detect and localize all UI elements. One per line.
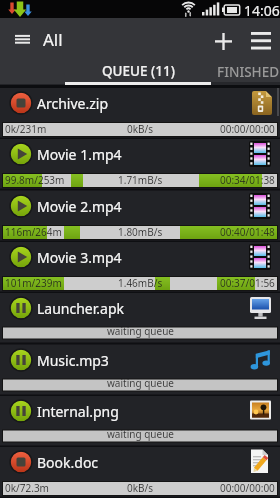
staticText: Book.doc (37, 453, 99, 472)
staticText: Archive.zip (37, 94, 108, 113)
button[interactable]: Book.doc (0, 447, 280, 498)
button[interactable] (8, 26, 42, 52)
button[interactable]: Movie 3.mp4 (0, 242, 280, 294)
staticText: 99.8m/253m (5, 173, 65, 187)
staticText: 0kB/s (127, 122, 154, 136)
staticText: Movie 1.mp4 (37, 145, 122, 164)
staticText: 101m/239m (5, 276, 62, 290)
button[interactable]: Music.mp3 (0, 345, 280, 397)
staticText: FINISHED (217, 63, 280, 81)
staticText: 0k/231m (5, 122, 47, 136)
button[interactable]: FINISHED (211, 58, 280, 85)
staticText: 14:06 (244, 1, 280, 19)
button[interactable]: QUEUE (11) (65, 58, 211, 85)
button[interactable]: Internal.png (0, 396, 280, 448)
staticText: Movie 2.mp4 (37, 197, 122, 216)
staticText: 00:00/00:00 (220, 122, 275, 136)
button[interactable]: Launcher.apk (0, 293, 280, 345)
staticText: waiting queue (107, 376, 174, 390)
button[interactable]: Movie 1.mp4 (0, 139, 280, 191)
staticText: 00:37/01:56 (220, 276, 275, 290)
button[interactable]: Movie 2.mp4 (0, 191, 280, 243)
staticText: 0kB/s (127, 481, 154, 495)
staticText: 1.46mB/s (118, 276, 163, 290)
staticText: waiting queue (107, 324, 174, 338)
staticText: 00:34/01:38 (220, 173, 275, 187)
staticText: waiting queue (107, 427, 174, 441)
staticText: 00:40/01:48 (220, 225, 275, 239)
staticText: 1.80mB/s (118, 225, 163, 239)
button[interactable] (244, 25, 278, 55)
staticText: Launcher.apk (37, 299, 124, 318)
staticText: 00:00/00:00 (220, 481, 275, 495)
staticText: 1.71mB/s (118, 173, 163, 187)
staticText: Movie 3.mp4 (37, 248, 122, 267)
staticText: Music.mp3 (37, 351, 109, 370)
button[interactable]: Archive.zip (0, 88, 280, 140)
staticText: All (43, 28, 63, 51)
staticText: Internal.png (37, 402, 119, 421)
staticText: QUEUE (11) (102, 62, 175, 80)
staticText: 0k/72.3m (5, 481, 49, 495)
button[interactable] (206, 25, 240, 55)
staticText: 116m/264m (5, 225, 62, 239)
